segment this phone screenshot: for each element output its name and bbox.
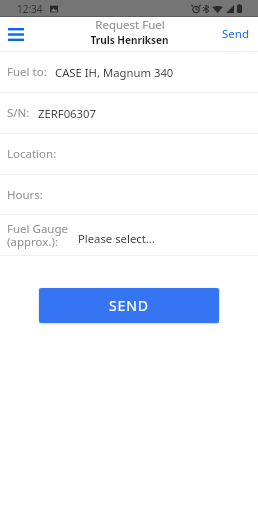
staticText: Location:	[7, 146, 57, 162]
staticText: CASE IH, Magnum 340	[55, 65, 174, 80]
staticText: SEND	[109, 296, 149, 315]
button[interactable]: SEND	[39, 288, 219, 323]
staticText: Hours:	[7, 187, 43, 203]
staticText: Request Fuel	[95, 17, 165, 33]
staticText: Please select...	[78, 231, 155, 246]
button[interactable]: Open navigation menu	[0, 17, 32, 51]
staticText: Fuel to:	[7, 64, 47, 80]
button[interactable]: S/N:	[0, 93, 258, 133]
button[interactable]: Location:	[0, 134, 258, 174]
staticText: Fuel Gauge (approx.):	[7, 221, 69, 249]
button[interactable]: Send	[213, 17, 258, 51]
staticText: Truls Henriksen	[90, 33, 169, 47]
staticText: S/N:	[7, 105, 30, 121]
button[interactable]: Fuel Gauge (approx.):	[0, 215, 258, 255]
button[interactable]: Fuel to:	[0, 52, 258, 92]
staticText: ZERF06307	[38, 106, 96, 121]
button[interactable]: Hours:	[0, 175, 258, 214]
staticText: 12:34	[17, 2, 43, 16]
staticText: Send	[222, 26, 249, 42]
